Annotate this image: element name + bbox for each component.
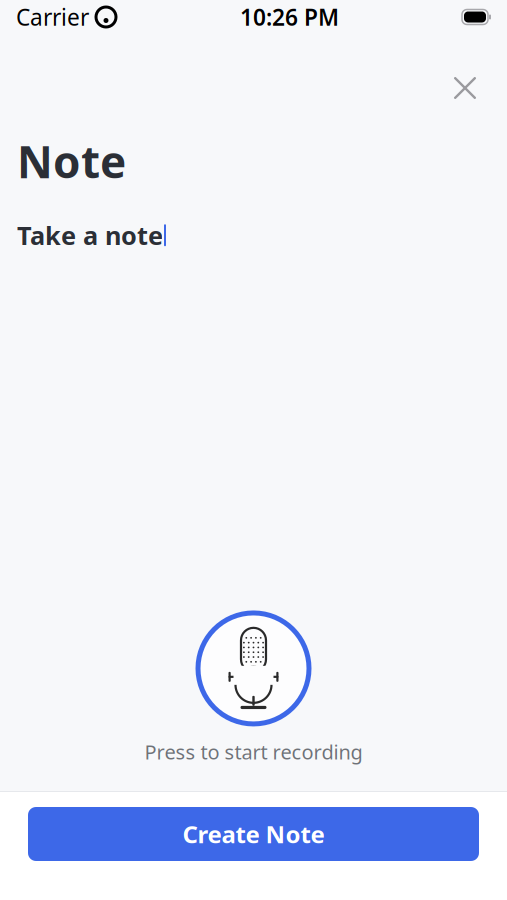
- button[interactable]: Press to start recording: [144, 610, 362, 765]
- staticText: Carrier: [16, 2, 89, 32]
- button[interactable]: Close: [443, 66, 487, 110]
- staticText: Create Note: [182, 818, 324, 850]
- button[interactable]: Create Note: [28, 807, 479, 861]
- staticText: Take a note: [17, 218, 163, 252]
- staticText: 10:26 PM: [240, 2, 339, 32]
- staticText: Note: [17, 132, 126, 190]
- staticText: Press to start recording: [144, 738, 362, 765]
